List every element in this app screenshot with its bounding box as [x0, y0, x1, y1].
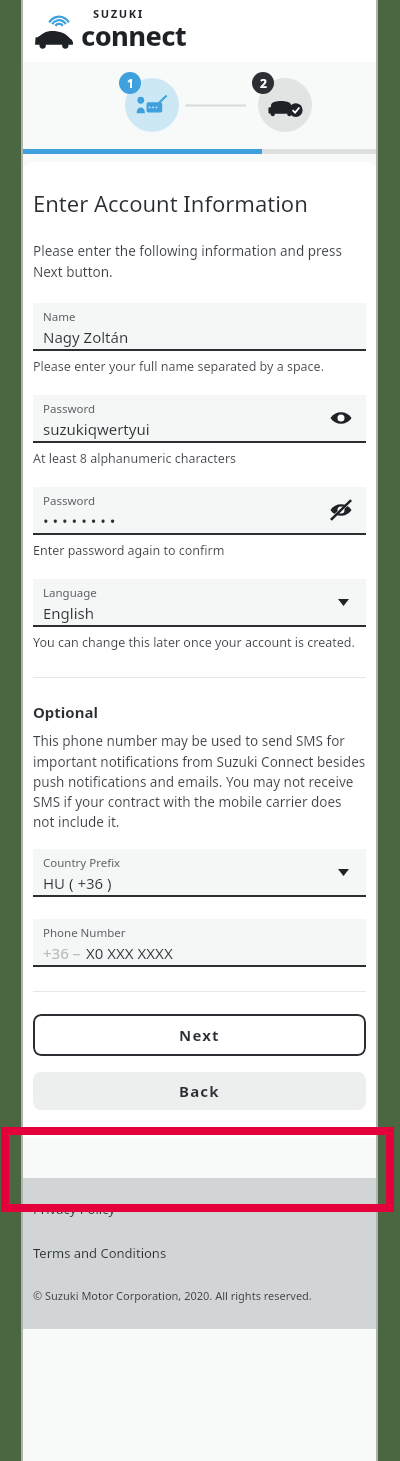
- staticText: Next: [179, 1025, 220, 1045]
- staticText: Enter password again to confirm: [33, 542, 225, 559]
- button[interactable]: Open dropdown: [332, 861, 354, 883]
- staticText: Language: [43, 585, 97, 601]
- button[interactable]: Privacy Policy: [33, 1200, 116, 1218]
- staticText: This phone number may be used to send SM…: [33, 732, 366, 831]
- button[interactable]: Open dropdown: [332, 591, 354, 613]
- button[interactable]: Show password: [328, 405, 354, 431]
- staticText: Phone Number: [43, 925, 126, 941]
- staticText: © Suzuki Motor Corporation, 2020. All ri…: [33, 1288, 312, 1303]
- staticText: 1: [127, 75, 134, 91]
- staticText: HU ( +36 ): [43, 873, 112, 893]
- staticText: connect: [81, 17, 187, 54]
- staticText: Back: [179, 1081, 220, 1101]
- staticText: Optional: [33, 702, 98, 722]
- staticText: suzukiqwertyui: [43, 419, 150, 439]
- staticText: • • • • • • • •: [43, 511, 116, 531]
- staticText: English: [43, 603, 95, 623]
- staticText: Name: [43, 309, 76, 325]
- staticText: Enter Account Information: [33, 188, 308, 218]
- button[interactable]: Terms and Conditions: [33, 1244, 167, 1262]
- staticText: You can change this later once your acco…: [33, 634, 355, 651]
- button[interactable]: Next: [33, 1014, 366, 1056]
- staticText: SUZUKI: [93, 6, 144, 21]
- staticText: Please enter the following information a…: [33, 242, 366, 281]
- button[interactable]: Hide password: [328, 497, 354, 523]
- staticText: +36 –: [43, 943, 81, 963]
- button[interactable]: Password: [33, 395, 366, 443]
- button[interactable]: Language: [33, 579, 366, 627]
- button[interactable]: Name: [33, 303, 366, 351]
- staticText: Please enter your full name separated by…: [33, 358, 324, 375]
- button[interactable]: Password: [33, 487, 366, 535]
- staticText: At least 8 alphanumeric characters: [33, 450, 237, 467]
- staticText: 2: [260, 75, 267, 91]
- button[interactable]: Phone Number: [33, 919, 366, 967]
- staticText: Country Prefix: [43, 855, 121, 871]
- button[interactable]: Country Prefix: [33, 849, 366, 897]
- staticText: Password: [43, 493, 96, 509]
- staticText: X0 XXX XXXX: [86, 943, 173, 963]
- staticText: Nagy Zoltán: [43, 327, 129, 347]
- button[interactable]: Back: [33, 1072, 366, 1110]
- staticText: Password: [43, 401, 96, 417]
